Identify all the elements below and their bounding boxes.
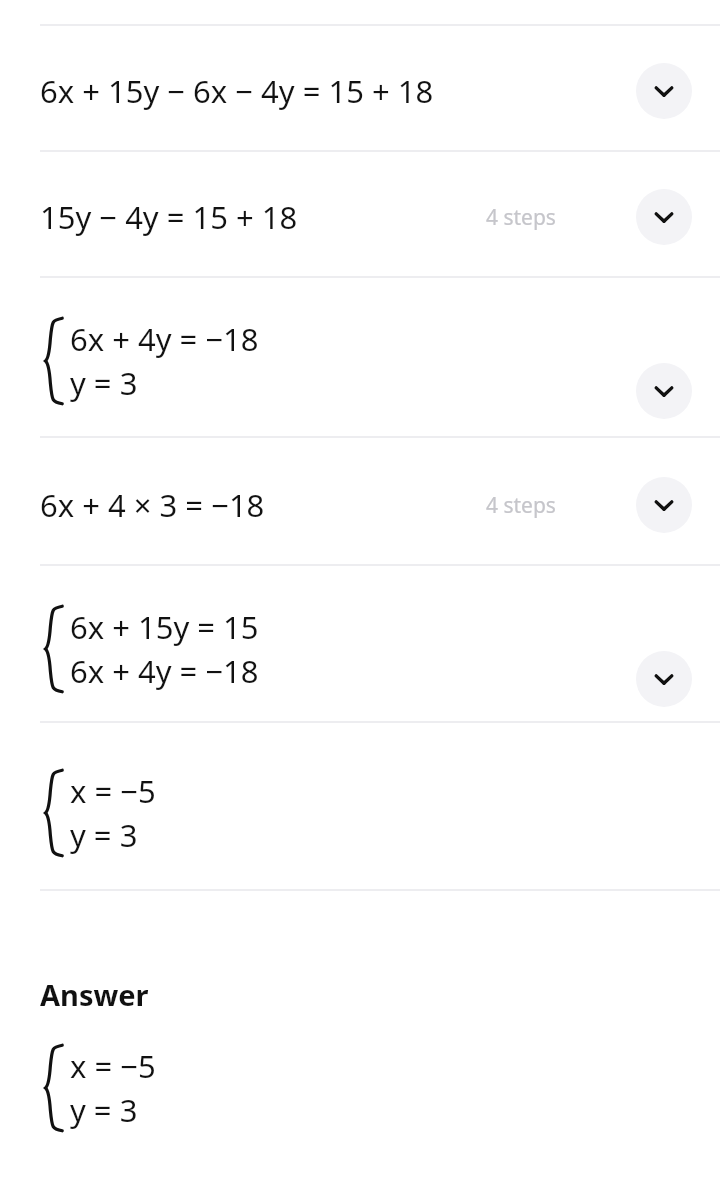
staticText: y = 3 [70,362,138,404]
button[interactable]: Expand step [636,477,692,533]
button[interactable]: Expand step [636,63,692,119]
button[interactable]: Expand step [636,189,692,245]
staticText: Answer [40,975,149,1014]
button[interactable]: Expand step [636,651,692,707]
button[interactable]: Expand step [636,363,692,419]
staticText: y = 3 [70,814,138,856]
staticText: x = −5 [70,770,156,812]
staticText: y = 3 [70,1089,138,1131]
staticText: 6x + 4y = −18 [70,650,259,692]
staticText: 4 steps [486,491,620,520]
button[interactable]: 15y − 4y = 15 + 18 [0,181,720,253]
button[interactable]: 6x + 15y − 6x − 4y = 15 + 18 [0,55,720,127]
staticText: 15y − 4y = 15 + 18 [40,196,298,238]
button[interactable]: 6x + 4y = −18 [0,303,720,419]
staticText: 6x + 15y = 15 [70,606,259,648]
staticText: 6x + 4 × 3 = −18 [40,484,265,526]
button[interactable]: x = −5 [0,755,720,871]
staticText: 6x + 4y = −18 [70,318,259,360]
button[interactable]: 6x + 4 × 3 = −18 [0,469,720,541]
staticText: 6x + 15y − 6x − 4y = 15 + 18 [40,70,434,112]
staticText: 4 steps [486,203,620,232]
staticText: x = −5 [70,1045,156,1087]
button[interactable]: 6x + 15y = 15 [0,591,720,707]
